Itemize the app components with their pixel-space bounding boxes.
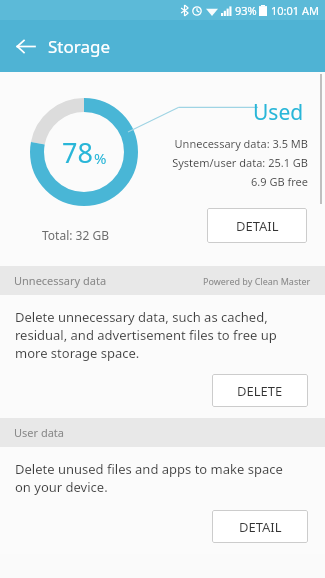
staticText: 6.9 GB free [251, 174, 308, 189]
staticText: DETAIL [239, 518, 282, 536]
staticText: User data [14, 425, 64, 440]
staticText: Unnecessary data: 3.5 MB [174, 136, 308, 151]
staticText: Powered by Clean Master [203, 275, 311, 287]
button[interactable]: DELETE [212, 374, 308, 407]
staticText: % [94, 148, 107, 168]
staticText: Delete unused files and apps to make spa… [15, 460, 283, 496]
staticText: Delete unnecessary data, such as cached,… [15, 308, 277, 362]
staticText: Total: 32 GB [42, 227, 109, 243]
button[interactable]: Back [8, 29, 42, 63]
staticText: Unnecessary data [14, 273, 107, 288]
staticText: Storage [48, 35, 111, 58]
staticText: System/user data: 25.1 GB [172, 155, 308, 170]
staticText: 93% [235, 3, 257, 18]
staticText: DETAIL [236, 217, 279, 235]
button[interactable]: DETAIL [207, 208, 307, 243]
staticText: 78 [62, 134, 93, 171]
staticText: Used [253, 98, 304, 127]
staticText: 10:01 AM [271, 3, 319, 18]
button[interactable]: DETAIL [212, 510, 308, 543]
staticText: DELETE [237, 382, 283, 400]
